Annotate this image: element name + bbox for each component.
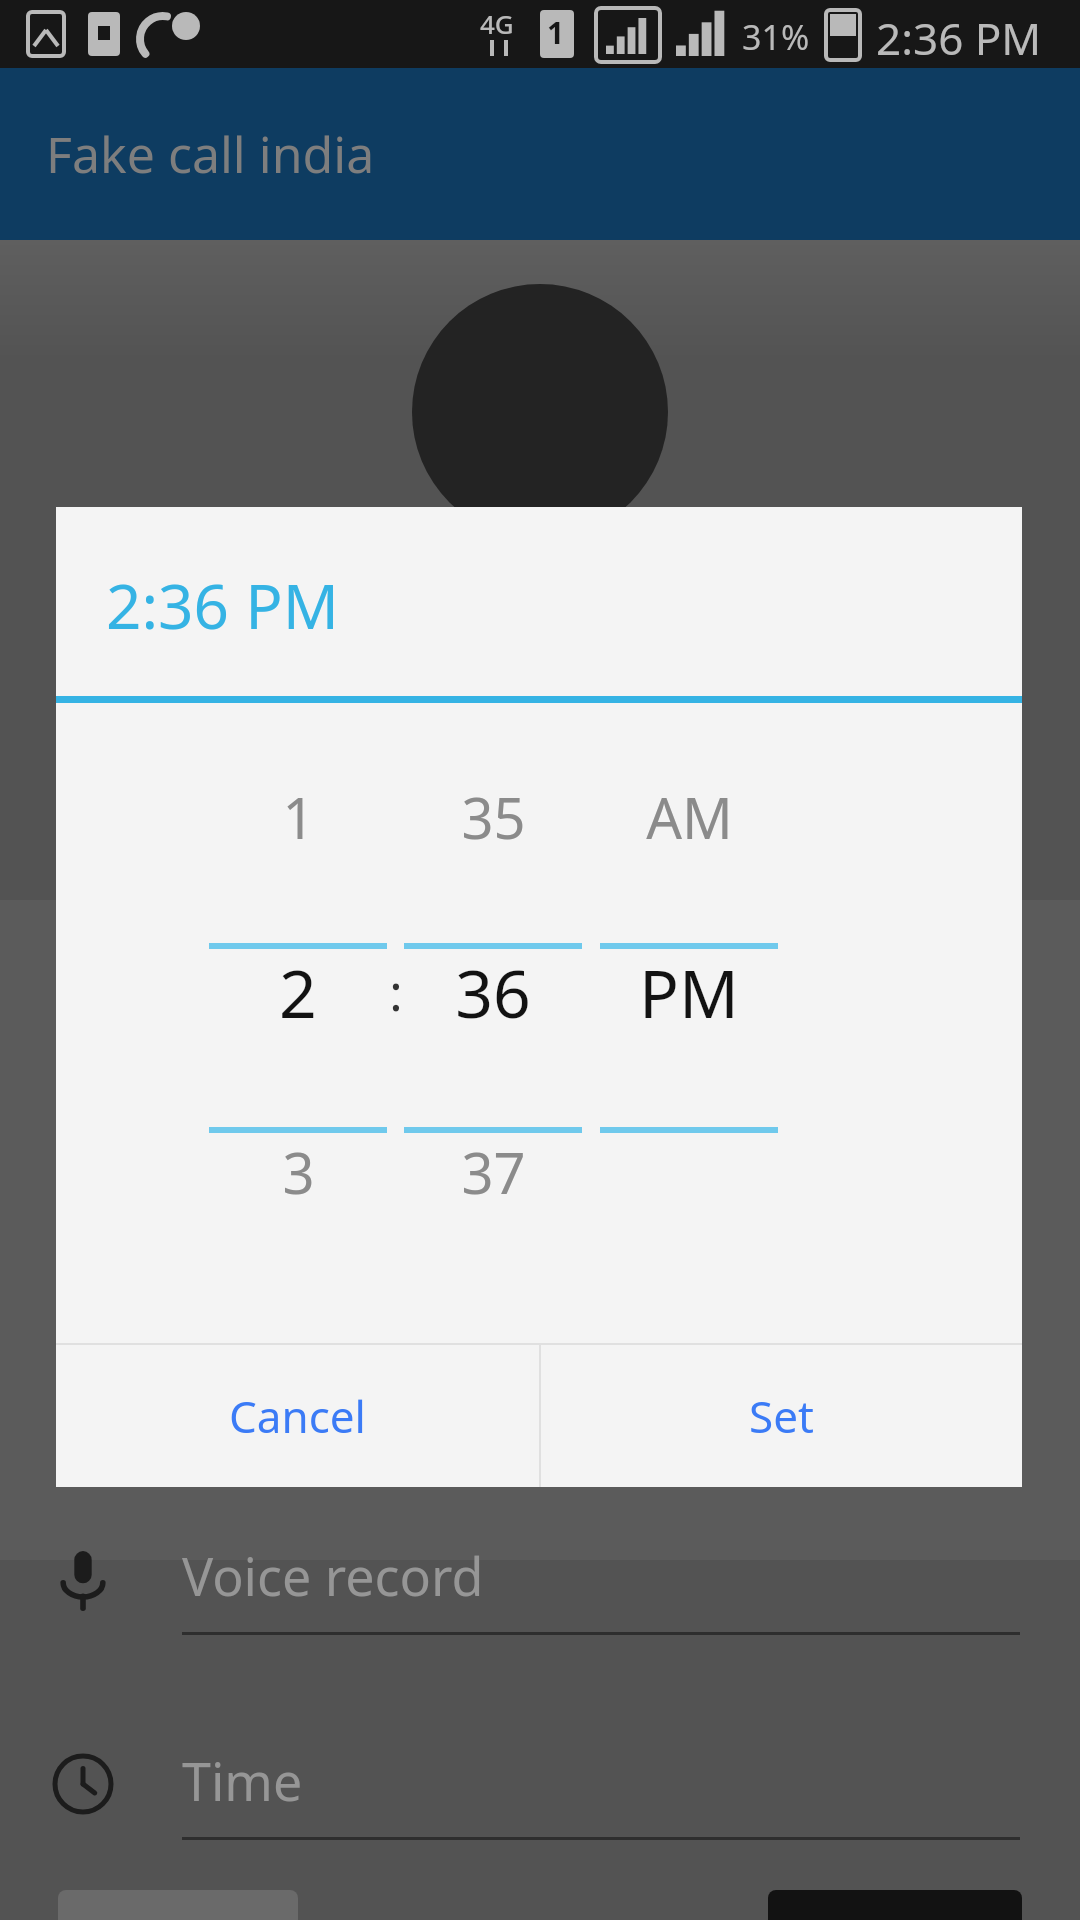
button[interactable] (768, 1890, 1022, 1920)
staticText: PM (639, 947, 739, 1037)
button[interactable] (404, 767, 582, 1267)
staticText: 1 (547, 12, 565, 53)
staticText: Voice record (182, 1540, 484, 1611)
staticText: 2:36 PM (876, 8, 1042, 68)
staticText: 3 (282, 1134, 315, 1210)
other: Time (52, 1753, 114, 1815)
other: Voice record (52, 1548, 114, 1610)
staticText: 2:36 PM (106, 563, 339, 647)
button[interactable]: Cancel (56, 1345, 539, 1487)
staticText: 37 (461, 1134, 526, 1210)
staticText: 2 (279, 947, 317, 1037)
staticText: Set (749, 1386, 814, 1446)
staticText: Cancel (229, 1386, 366, 1446)
button[interactable]: Time (0, 1735, 1080, 1895)
staticText: 31% (742, 14, 810, 60)
staticText: : (389, 958, 403, 1026)
button[interactable]: Set (541, 1345, 1022, 1487)
staticText: 36 (455, 947, 531, 1037)
staticText: AM (646, 779, 733, 855)
staticText: Fake call india (46, 120, 375, 188)
staticText: 1 (282, 779, 315, 855)
staticText: Time (182, 1745, 303, 1816)
staticText: 35 (461, 779, 526, 855)
button[interactable] (600, 767, 778, 1267)
button[interactable]: Voice record (0, 1530, 1080, 1690)
button[interactable] (209, 767, 387, 1267)
staticText: 4G (480, 6, 514, 41)
